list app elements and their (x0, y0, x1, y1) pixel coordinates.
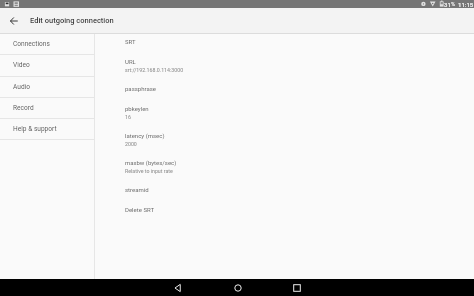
staticText: 11:15 (458, 1, 474, 8)
staticText: srt://192.168.0.114:3000 (125, 67, 184, 73)
staticText: pbkeylen (125, 105, 149, 112)
button[interactable]: Help & support (0, 119, 94, 140)
button[interactable]: Home (208, 279, 267, 296)
staticText: passphrase (125, 85, 156, 92)
staticText: Help & support (13, 125, 57, 133)
button[interactable]: latency (msec) (95, 130, 474, 157)
button[interactable]: Audio (0, 77, 94, 98)
staticText: latency (msec) (125, 132, 165, 139)
button[interactable]: Delete SRT (95, 204, 474, 224)
button[interactable]: Record (0, 98, 94, 119)
staticText: 31 (444, 1, 451, 8)
staticText: SRT (125, 38, 136, 45)
staticText: Edit outgoing connection (30, 16, 114, 25)
staticText: Video (13, 61, 30, 69)
staticText: maxbw (bytes/sec) (125, 159, 177, 166)
button[interactable]: Recents (267, 279, 326, 296)
staticText: Connections (13, 40, 50, 48)
staticText: Delete SRT (125, 206, 154, 213)
button[interactable]: Back (148, 279, 207, 296)
staticText: Record (13, 104, 34, 112)
button[interactable]: Back (2, 9, 26, 33)
button[interactable]: Connections (0, 34, 94, 55)
staticText: % (451, 1, 456, 8)
button[interactable]: SRT (95, 36, 474, 56)
button[interactable]: streamid (95, 184, 474, 204)
staticText: Audio (13, 83, 30, 91)
staticText: URL (125, 58, 136, 65)
staticText: 16 (125, 114, 131, 120)
button[interactable]: Video (0, 55, 94, 76)
button[interactable]: URL (95, 56, 474, 83)
staticText: 2000 (125, 141, 137, 147)
staticText: Relative to input rate (125, 168, 173, 174)
button[interactable]: maxbw (bytes/sec) (95, 157, 474, 184)
button[interactable]: passphrase (95, 83, 474, 103)
button[interactable]: pbkeylen (95, 103, 474, 130)
staticText: streamid (125, 186, 149, 193)
